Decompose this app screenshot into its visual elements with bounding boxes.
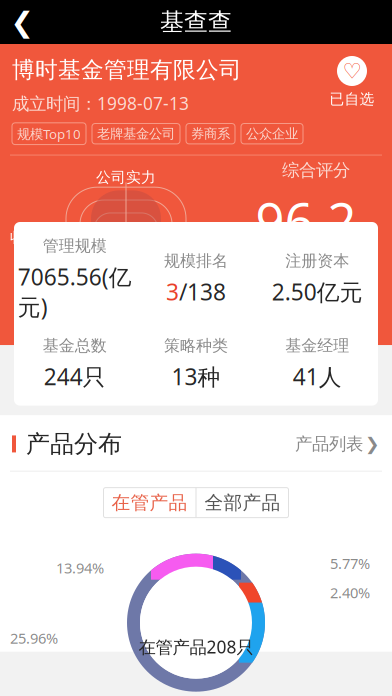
staticText: 2.40%: [330, 583, 370, 602]
staticText: ♡: [342, 59, 361, 83]
staticText: 已自选: [329, 90, 374, 108]
staticText: 注册资本: [285, 251, 349, 271]
staticText: 41人: [293, 361, 342, 392]
button[interactable]: 已自选: [324, 56, 380, 108]
staticText: 公司实力: [96, 168, 156, 186]
button[interactable]: 返回: [0, 0, 44, 44]
staticText: 244只: [44, 361, 106, 392]
staticText: 策略种类: [164, 336, 228, 356]
staticText: 产品列表: [295, 433, 363, 455]
button[interactable]: 全部产品: [196, 488, 288, 518]
staticText: ❮: [10, 6, 33, 38]
staticText: 博时基金管理有限公司: [12, 56, 242, 84]
staticText: 规模排名: [164, 251, 228, 271]
staticText: /138: [179, 277, 226, 307]
button[interactable]: 在管产品: [103, 488, 195, 518]
staticText: 基金总数: [43, 336, 107, 356]
staticText: ❯: [365, 434, 380, 454]
staticText: 2.50亿元: [272, 277, 363, 307]
staticText: 收益创造: [10, 228, 70, 246]
staticText: 3: [166, 277, 179, 307]
staticText: 5.77%: [330, 553, 370, 573]
staticText: 风险控制: [150, 298, 210, 316]
staticText: 投研能力: [42, 298, 102, 316]
staticText: 规模Top10: [17, 125, 81, 143]
staticText: 基金经理: [285, 336, 349, 356]
staticText: 管理规模: [43, 236, 107, 256]
staticText: 券商系: [191, 125, 230, 142]
staticText: 排名：9/150: [267, 260, 364, 283]
staticText: 全部产品: [204, 491, 280, 514]
staticText: 成立时间：1998-07-13: [12, 92, 189, 115]
staticText: 在管产品208只: [138, 635, 253, 658]
staticText: 综合评分: [282, 160, 350, 181]
staticText: 在管产品: [111, 491, 187, 514]
staticText: 老牌基金公司: [97, 125, 175, 142]
staticText: 13种: [171, 361, 220, 392]
button[interactable]: 产品列表: [295, 433, 380, 455]
staticText: 产品分布: [26, 429, 122, 459]
staticText: 优秀: [287, 289, 345, 325]
staticText: 96.2: [255, 187, 356, 254]
staticText: 13.94%: [56, 558, 104, 578]
staticText: 基查查: [160, 7, 232, 37]
staticText: 7065.56(亿元): [18, 262, 132, 322]
staticText: 25.96%: [10, 628, 58, 648]
staticText: 公众企业: [246, 125, 298, 142]
